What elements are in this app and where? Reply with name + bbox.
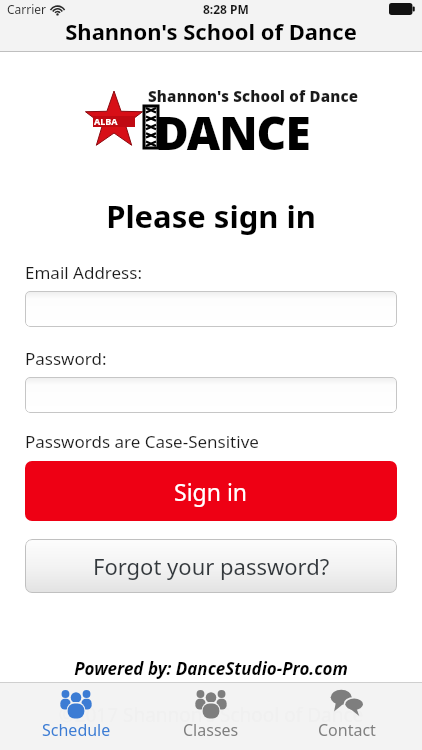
staticText: Password: [25, 347, 422, 370]
staticText: Forgot your password? [93, 551, 330, 581]
staticText: 8:28 PM [203, 1, 249, 17]
staticText: Classes [183, 719, 239, 741]
staticText: Email Address: [25, 261, 422, 284]
staticText: Carrier [7, 1, 47, 17]
staticText: ALBA [94, 115, 118, 127]
staticText: Contact [318, 719, 376, 741]
button[interactable]: Schedule [16, 682, 136, 750]
staticText: DANCE [155, 101, 310, 164]
staticText: Sign in [174, 476, 248, 507]
button[interactable]: Forgot your password? [25, 539, 397, 593]
staticText: Shannon's School of Dance [0, 16, 422, 46]
button[interactable]: Contact [287, 682, 407, 750]
staticText: Schedule [42, 719, 111, 741]
button[interactable] [25, 291, 397, 327]
staticText: Passwords are Case-Sensitive [25, 430, 422, 453]
staticText: Shannon's School of Dance [148, 86, 359, 106]
button[interactable] [25, 377, 397, 413]
staticText: Powered by: DanceStudio-Pro.com [0, 657, 422, 680]
button[interactable]: Sign in [25, 461, 397, 521]
staticText: ©2017 Shannon's School of Dance [0, 702, 422, 728]
staticText: Please sign in [0, 195, 422, 237]
button[interactable]: Classes [151, 682, 271, 750]
